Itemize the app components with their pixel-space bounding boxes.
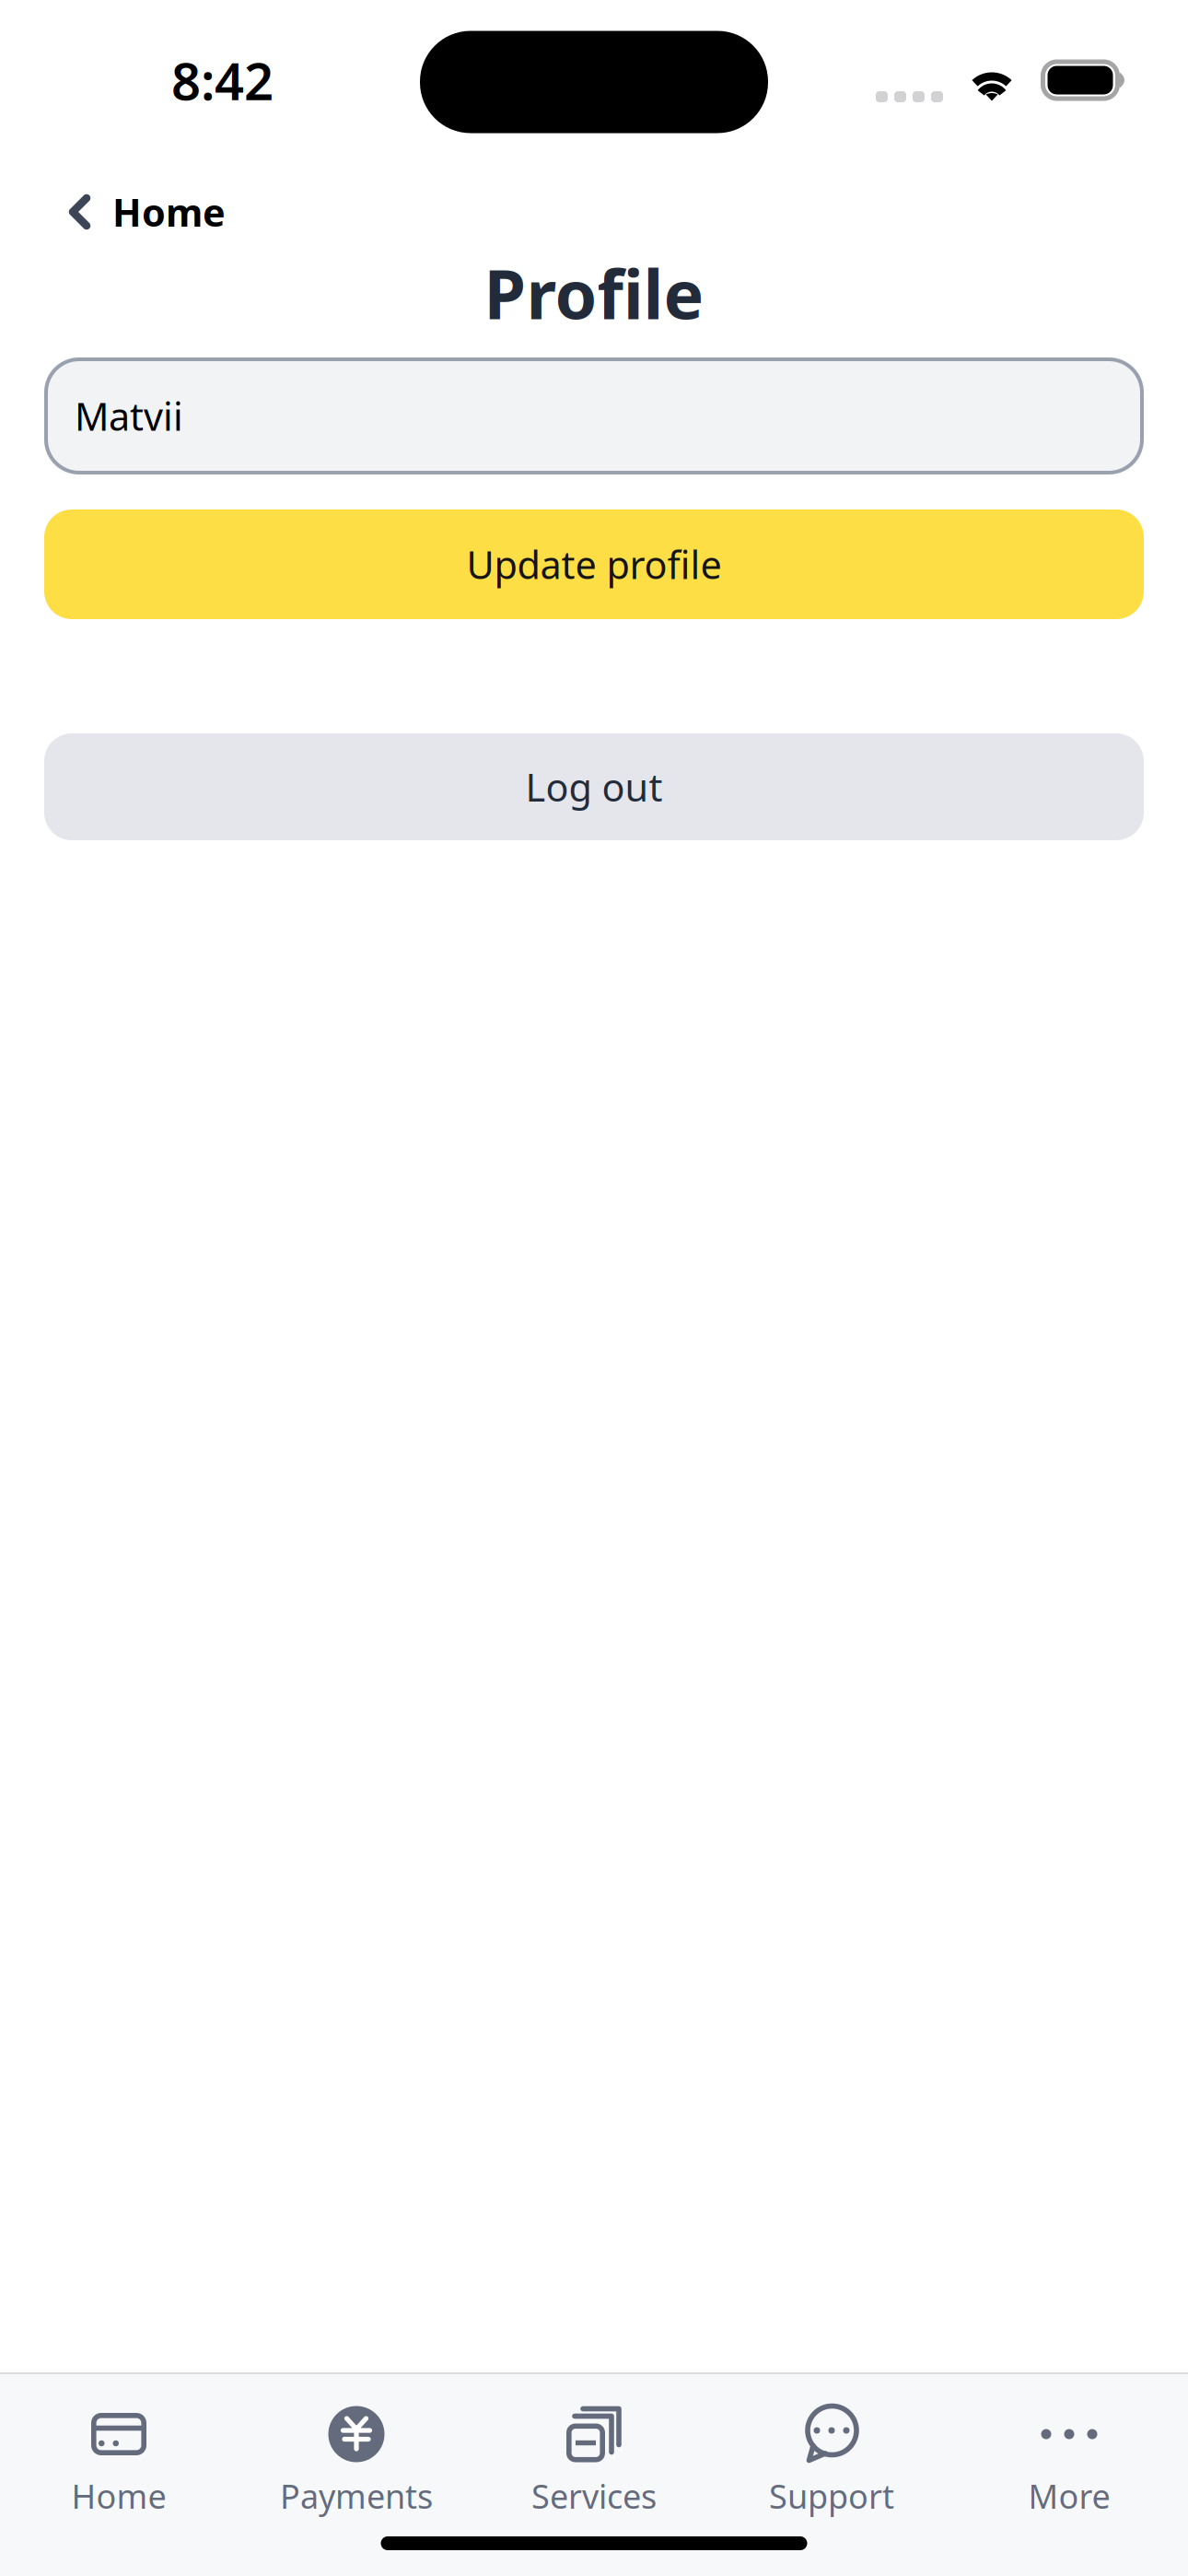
button[interactable]: Support [713, 2402, 950, 2516]
button[interactable]: Payments [238, 2402, 475, 2516]
button[interactable]: Update profile [0, 509, 1188, 619]
staticText: Payments [280, 2474, 433, 2518]
staticText: Profile [484, 248, 704, 338]
staticText: Home [112, 187, 226, 237]
staticText: Home [71, 2474, 166, 2518]
staticText: More [1028, 2474, 1110, 2518]
button[interactable]: More [950, 2402, 1188, 2516]
button[interactable]: Home [0, 166, 226, 258]
staticText: Services [531, 2474, 657, 2518]
staticText: Update profile [466, 539, 722, 590]
staticText: Log out [525, 762, 663, 812]
staticText: Matvii [75, 391, 183, 441]
staticText: Support [769, 2474, 894, 2518]
button[interactable]: Services [475, 2402, 713, 2516]
button[interactable]: Log out [0, 733, 1188, 840]
staticText: 8:42 [171, 46, 274, 114]
button[interactable]: Home [0, 2402, 238, 2516]
